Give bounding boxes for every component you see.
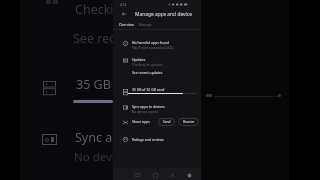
staticText: See recent updates bbox=[132, 70, 163, 75]
button[interactable]: 35 GB of 32 GB used bbox=[113, 85, 201, 99]
staticText: Receive bbox=[183, 120, 195, 124]
staticText: Sync apps to devices bbox=[132, 104, 165, 109]
button[interactable]: Ratings and reviews bbox=[113, 133, 201, 145]
staticText: No harmful apps found bbox=[132, 40, 170, 45]
button[interactable]: Share apps bbox=[113, 116, 201, 128]
button[interactable]: Overview bbox=[116, 20, 137, 29]
staticText: Play Protect scanned at 24:02 bbox=[132, 46, 174, 50]
staticText: Send bbox=[163, 120, 171, 124]
button[interactable]: Books bbox=[168, 171, 176, 179]
staticText: Overview bbox=[119, 22, 134, 27]
staticText: Share apps bbox=[132, 119, 150, 124]
button[interactable]: Updates bbox=[113, 54, 201, 69]
button[interactable]: Sync apps to devices bbox=[113, 101, 201, 116]
button[interactable]: Back bbox=[119, 9, 128, 18]
staticText: Manage bbox=[139, 22, 152, 27]
staticText: Manage apps and device bbox=[135, 11, 192, 18]
staticText: See rec bbox=[73, 30, 116, 47]
button[interactable]: Profile bbox=[185, 171, 193, 179]
staticText: Checkir bbox=[75, 1, 119, 18]
staticText: No devi bbox=[74, 149, 115, 165]
button[interactable]: No harmful apps found bbox=[113, 37, 201, 52]
staticText: 35 GB o bbox=[76, 76, 122, 93]
staticText: 35 GB of 32 GB used bbox=[132, 87, 165, 92]
button[interactable]: Receive bbox=[178, 118, 199, 126]
staticText: Checking for updates… bbox=[132, 63, 165, 67]
staticText: Ratings and reviews bbox=[132, 137, 164, 142]
button[interactable]: Apps bbox=[151, 171, 159, 179]
button[interactable]: See recent updates bbox=[113, 68, 201, 77]
staticText: Updates bbox=[132, 57, 146, 62]
staticText: No devices synced bbox=[132, 110, 158, 114]
staticText: 4:14 bbox=[120, 3, 127, 7]
button[interactable]: Manage bbox=[136, 20, 155, 29]
button[interactable]: Send bbox=[158, 118, 175, 126]
button[interactable]: Games bbox=[133, 171, 141, 179]
staticText: Sync a bbox=[75, 129, 113, 146]
